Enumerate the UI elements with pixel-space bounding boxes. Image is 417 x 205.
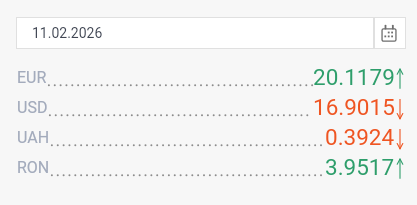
staticText: 11.02.2026 [32,25,103,41]
button[interactable]: EUR [0,62,417,92]
staticText: 0.3924 [325,124,395,150]
button[interactable]: USD [0,92,417,122]
staticText: 20.1179 [313,64,395,90]
button[interactable]: UAH [0,122,417,152]
staticText: EUR [17,68,47,87]
staticText: USD [17,98,48,117]
staticText: 3.9517 [325,154,395,180]
button[interactable]: Pick date [374,17,406,49]
button[interactable]: 11.02.2026 [16,17,374,49]
staticText: RON [17,158,50,177]
staticText: UAH [17,128,50,147]
staticText: 16.9015 [313,94,395,120]
button[interactable]: RON [0,152,417,182]
